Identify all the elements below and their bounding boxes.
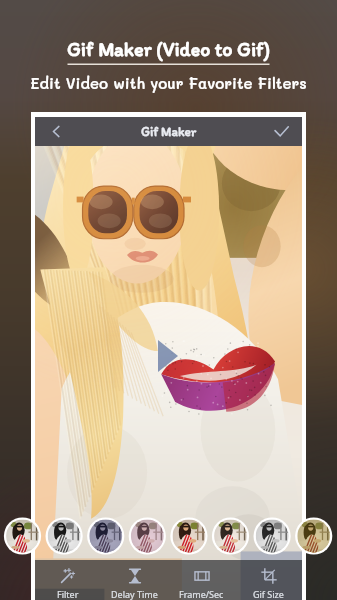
button[interactable]: Frame/Sec	[168, 560, 235, 600]
button[interactable]: Gif Size	[235, 560, 302, 600]
other: Filter previews	[0, 0, 337, 600]
button[interactable]: Done	[260, 117, 302, 146]
staticText: Gif Size	[253, 588, 284, 600]
staticText: Gif Maker	[77, 124, 260, 140]
button[interactable]: Back	[35, 117, 77, 146]
button[interactable]: Filter	[35, 560, 101, 600]
staticText: Delay Time	[111, 588, 158, 600]
button[interactable]: Delay Time	[101, 560, 168, 600]
staticText: Edit Video with your Favorite Filters	[0, 73, 337, 92]
staticText: Gif Maker (Video to Gif)	[0, 37, 337, 61]
staticText: Filter	[57, 588, 79, 600]
staticText: Frame/Sec	[179, 588, 224, 600]
